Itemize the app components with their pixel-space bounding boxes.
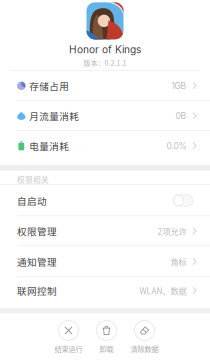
staticText: 清除数据 bbox=[130, 343, 158, 354]
staticText: WLAN、数据 bbox=[139, 285, 186, 297]
staticText: Honor of Kings bbox=[69, 43, 141, 56]
button[interactable]: 通知管理 bbox=[0, 246, 210, 277]
button[interactable]: 清除数据 bbox=[129, 320, 159, 354]
staticText: 通知管理 bbox=[17, 255, 57, 269]
staticText: 卸载 bbox=[99, 343, 113, 354]
button[interactable]: 权限管理 bbox=[0, 216, 210, 246]
staticText: 权限管理 bbox=[17, 224, 57, 238]
staticText: 0B bbox=[175, 111, 186, 121]
button[interactable]: 结束运行 bbox=[53, 320, 83, 354]
staticText: 联网控制 bbox=[17, 284, 57, 298]
staticText: 版本：0.2.1.1 bbox=[83, 58, 126, 68]
button[interactable]: 自启动 bbox=[0, 185, 210, 216]
staticText: 角标 bbox=[170, 256, 186, 268]
button[interactable]: 卸载 bbox=[91, 320, 121, 354]
button[interactable]: 存储占用 bbox=[0, 71, 210, 101]
staticText: 结束运行 bbox=[54, 343, 82, 354]
staticText: 1GB bbox=[171, 81, 186, 91]
staticText: 权限相关 bbox=[17, 174, 49, 185]
button[interactable]: 月流量消耗 bbox=[0, 101, 210, 131]
staticText: 自启动 bbox=[17, 193, 47, 207]
staticText: 存储占用 bbox=[29, 79, 69, 93]
staticText: 0.0% bbox=[166, 141, 186, 151]
staticText: 2项允许 bbox=[157, 225, 186, 237]
button[interactable]: 电量消耗 bbox=[0, 131, 210, 161]
staticText: 月流量消耗 bbox=[29, 109, 79, 123]
staticText: 电量消耗 bbox=[29, 139, 69, 153]
button[interactable]: 联网控制 bbox=[0, 277, 210, 304]
